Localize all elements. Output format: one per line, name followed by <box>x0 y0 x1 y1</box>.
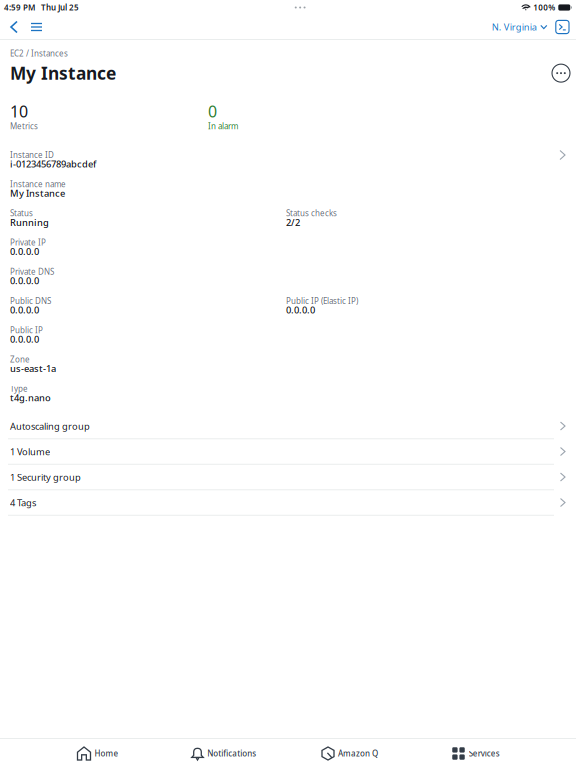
staticText: My Instance <box>10 62 116 85</box>
staticText: 4:59 PM <box>4 2 35 13</box>
staticText: Private DNS <box>10 266 54 277</box>
staticText: Status <box>10 208 33 218</box>
button[interactable]: Notifications <box>161 739 287 768</box>
button[interactable]: Home <box>35 739 161 768</box>
staticText: Notifications <box>207 748 256 759</box>
button[interactable]: Menu <box>24 15 49 39</box>
button[interactable]: 1 Volume <box>0 439 576 465</box>
staticText: Type <box>10 383 28 394</box>
button[interactable]: More actions <box>552 64 570 82</box>
staticText: Thu Jul 25 <box>41 2 79 13</box>
button[interactable]: CloudShell <box>550 15 572 39</box>
staticText: Instance ID <box>10 149 54 160</box>
staticText: Autoscaling group <box>10 420 90 432</box>
button[interactable]: 4 Tags <box>0 490 576 516</box>
staticText: EC2 / Instances <box>10 48 68 59</box>
staticText: Instance name <box>10 179 66 189</box>
button[interactable]: N. Virginia <box>489 15 550 39</box>
staticText: 0.0.0.0 <box>286 304 315 316</box>
button[interactable]: Autoscaling group <box>0 414 576 439</box>
staticText: Status checks <box>286 208 337 218</box>
staticText: Public DNS <box>10 296 51 306</box>
button[interactable]: Services <box>413 739 539 768</box>
staticText: 0.0.0.0 <box>10 274 39 287</box>
staticText: Amazon Q <box>338 748 378 759</box>
staticText: 0.0.0.0 <box>10 333 39 345</box>
staticText: 1 Security group <box>10 471 81 483</box>
staticText: 0.0.0.0 <box>10 304 39 316</box>
button[interactable]: Back <box>4 15 24 39</box>
staticText: Public IP <box>10 325 43 335</box>
staticText: i-0123456789abcdef <box>10 158 96 170</box>
staticText: 4 Tags <box>10 496 36 509</box>
staticText: Public IP (Elastic IP) <box>286 296 358 306</box>
staticText: t4g.nano <box>10 391 51 404</box>
staticText: 0.0.0.0 <box>10 245 39 258</box>
staticText: In alarm <box>208 121 238 131</box>
staticText: us-east-1a <box>10 362 56 375</box>
staticText: Zone <box>10 354 30 365</box>
button[interactable]: 1 Security group <box>0 465 576 490</box>
staticText: Running <box>10 216 49 228</box>
staticText: My Instance <box>10 187 65 199</box>
staticText: 100% <box>533 2 555 13</box>
staticText: 0 <box>208 101 217 122</box>
staticText: N. Virginia <box>492 21 537 33</box>
staticText: Home <box>94 748 118 759</box>
staticText: Services <box>469 748 500 759</box>
staticText: Metrics <box>10 121 38 131</box>
button[interactable]: Amazon Q <box>287 739 413 768</box>
staticText: 1 Volume <box>10 445 50 458</box>
staticText: 10 <box>10 101 28 122</box>
staticText: 2/2 <box>286 216 300 228</box>
staticText: Private IP <box>10 237 46 248</box>
